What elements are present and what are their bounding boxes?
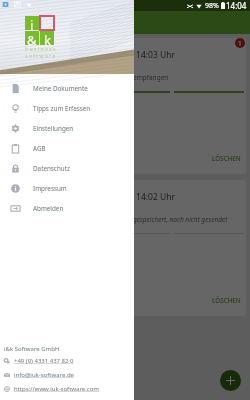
staticText: empfangen — [133, 73, 169, 82]
staticText: business — [25, 46, 57, 53]
button[interactable]: Meine Dokumente — [0, 78, 134, 98]
staticText: 98% — [205, 1, 219, 11]
staticText: Datenschutz — [33, 164, 70, 173]
button[interactable]: Neue Erfassung — [220, 370, 241, 391]
button[interactable]: info@iuk-software.de — [4, 370, 74, 380]
button[interactable]: LÖSCHEN — [206, 292, 246, 309]
button[interactable]: 0 14:02 Uhr — [4, 180, 246, 316]
staticText: LÖSCHEN — [212, 296, 241, 305]
staticText: 1 — [238, 39, 242, 48]
staticText: https://www.iuk-software.com — [14, 385, 99, 393]
button[interactable]: Benachrichtigungen — [235, 38, 245, 48]
button[interactable]: Impressum — [0, 178, 134, 198]
button[interactable]: Einstellungen — [0, 118, 134, 138]
button[interactable]: +49 (0) 4331 437 82 0 — [4, 356, 74, 366]
staticText: info@iuk-software.de — [14, 371, 74, 379]
button[interactable]: AGB — [0, 138, 134, 158]
button[interactable]: Tipps zum Erfassen — [0, 98, 134, 118]
staticText: 0 14:03 Uhr — [129, 49, 175, 61]
staticText: Einstellungen — [33, 124, 74, 133]
staticText: 0 14:02 Uhr — [129, 191, 175, 203]
button[interactable]: https://www.iuk-software.com — [4, 384, 99, 394]
staticText: & — [27, 31, 37, 45]
staticText: i — [30, 16, 34, 30]
button[interactable]: LÖSCHEN — [206, 150, 246, 167]
button[interactable]: 0 14:03 Uhr — [4, 38, 246, 174]
staticText: LÖSCHEN — [212, 154, 241, 163]
staticText: 14:04 — [226, 0, 247, 11]
button[interactable]: Datenschutz — [0, 158, 134, 178]
staticText: Meine Dokumente — [33, 84, 88, 93]
staticText: k — [44, 31, 51, 45]
button[interactable]: Abmelden — [0, 198, 134, 218]
staticText: AGB — [33, 144, 46, 153]
staticText: Abmelden — [33, 204, 64, 213]
staticText: +49 (0) 4331 437 82 0 — [14, 357, 74, 365]
staticText: gespeichert, noch nicht gesendet — [133, 215, 228, 224]
staticText: software — [25, 53, 57, 60]
staticText: i&k Software GmbH — [4, 345, 60, 353]
staticText: Tipps zum Erfassen — [33, 104, 91, 113]
staticText: Impressum — [33, 184, 67, 193]
